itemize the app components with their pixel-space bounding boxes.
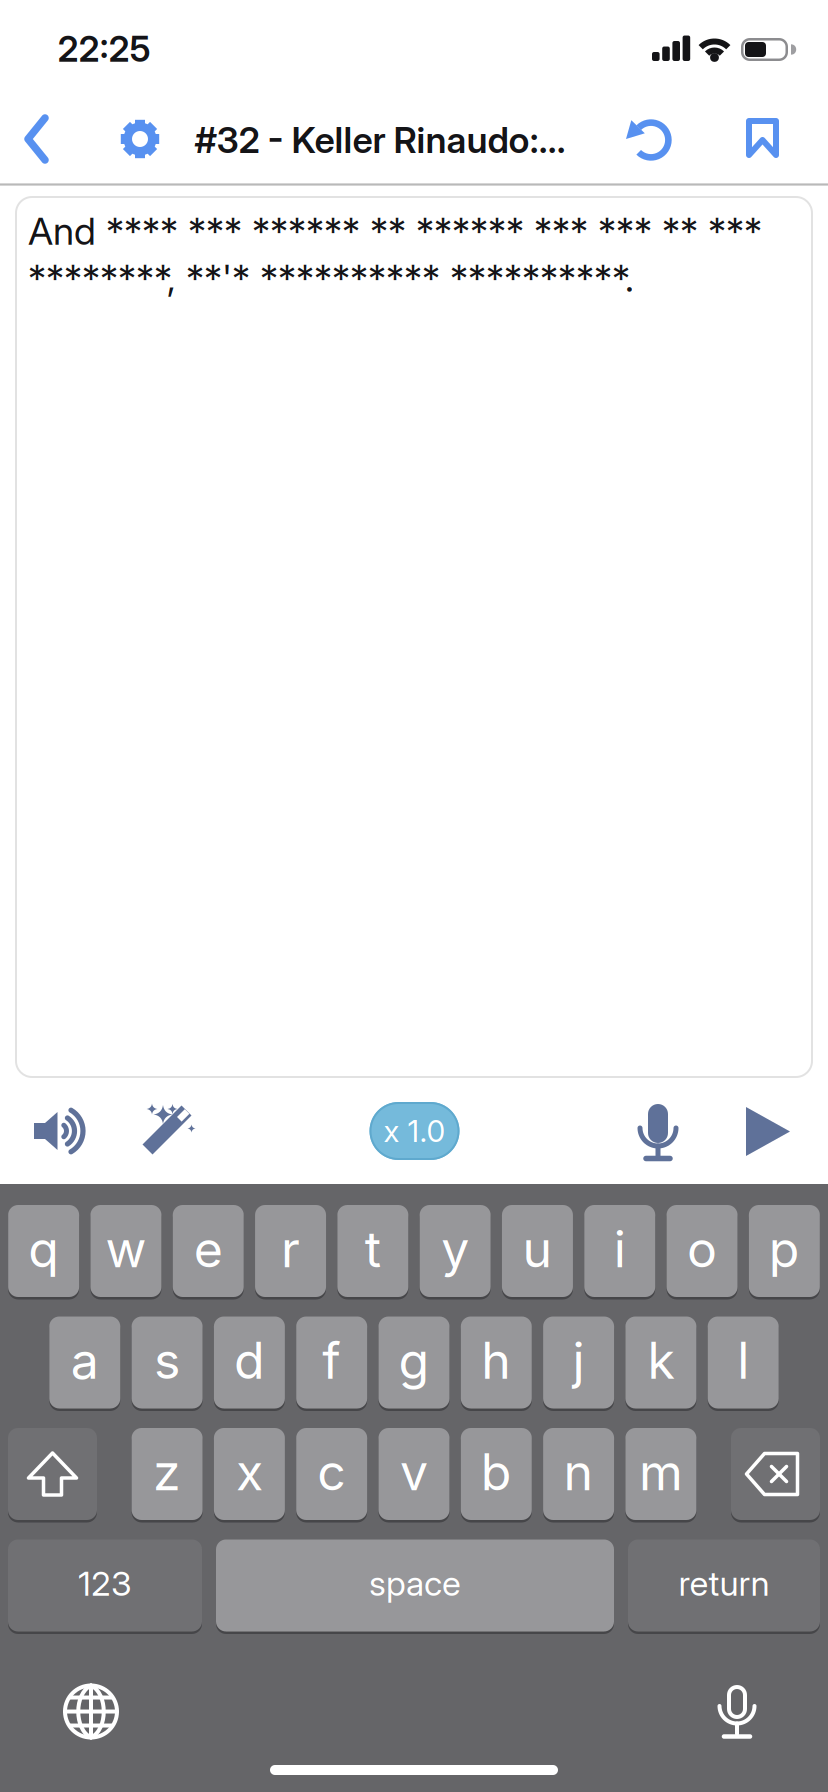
button[interactable]: f	[296, 1316, 367, 1408]
button[interactable]: Replay	[625, 113, 675, 163]
button[interactable]: Next keyboard	[63, 1683, 119, 1739]
button[interactable]: m	[625, 1428, 696, 1520]
button[interactable]: v	[378, 1428, 449, 1520]
button[interactable]: e	[173, 1205, 244, 1297]
button[interactable]: 123	[8, 1539, 202, 1631]
button[interactable]: Record	[623, 1095, 693, 1165]
staticText: e	[194, 1219, 223, 1279]
staticText: a	[71, 1330, 99, 1391]
button[interactable]: b	[461, 1428, 532, 1520]
button[interactable]: Hint	[130, 1088, 210, 1168]
button[interactable]: c	[296, 1428, 367, 1520]
button[interactable]: x	[214, 1428, 285, 1520]
button[interactable]: space	[216, 1539, 614, 1631]
button[interactable]: d	[214, 1316, 285, 1408]
staticText: h	[481, 1330, 511, 1391]
button[interactable]: j	[543, 1316, 614, 1408]
staticText: x 1.0	[383, 1113, 445, 1149]
staticText: v	[400, 1442, 428, 1502]
staticText: y	[441, 1219, 469, 1279]
button[interactable]: Play	[746, 1107, 790, 1156]
button[interactable]: Back	[24, 116, 52, 164]
button[interactable]: o	[666, 1205, 737, 1297]
button[interactable]: p	[749, 1205, 820, 1297]
staticText: p	[769, 1219, 800, 1279]
button[interactable]: t	[337, 1205, 408, 1297]
staticText: f	[322, 1330, 341, 1391]
button[interactable]: x 1.0	[369, 1102, 459, 1160]
staticText: s	[154, 1330, 180, 1391]
button[interactable]: r	[255, 1205, 326, 1297]
staticText: l	[737, 1330, 749, 1391]
staticText: c	[317, 1442, 346, 1502]
staticText: r	[281, 1219, 300, 1279]
staticText: o	[687, 1219, 717, 1279]
button[interactable]: h	[461, 1316, 532, 1408]
staticText: #32 - Keller Rinaudo:...	[194, 118, 565, 162]
button[interactable]: Dictate	[704, 1678, 770, 1740]
button[interactable]: a	[49, 1316, 120, 1408]
button[interactable]: return	[628, 1539, 820, 1631]
button[interactable]: u	[502, 1205, 573, 1297]
staticText: space	[369, 1563, 461, 1604]
button[interactable]: Bookmark	[746, 118, 779, 158]
staticText: x	[236, 1442, 263, 1502]
staticText: t	[365, 1219, 381, 1279]
button[interactable]: n	[543, 1428, 614, 1520]
button[interactable]: q	[8, 1205, 79, 1297]
button[interactable]: Listen	[25, 1099, 115, 1163]
staticText: w	[105, 1219, 146, 1279]
button[interactable]: z	[132, 1428, 203, 1520]
staticText: And **** *** ****** ** ****** *** *** **…	[28, 208, 762, 254]
button[interactable]: i	[584, 1205, 655, 1297]
button[interactable]: Delete	[731, 1428, 820, 1520]
staticText: m	[639, 1442, 683, 1502]
button[interactable]: k	[625, 1316, 696, 1408]
staticText: ********, **'* ********** **********.	[28, 255, 634, 301]
button[interactable]: Settings	[117, 116, 163, 162]
staticText: z	[153, 1442, 181, 1502]
staticText: n	[564, 1442, 594, 1502]
staticText: k	[647, 1330, 674, 1391]
staticText: q	[28, 1219, 59, 1279]
staticText: g	[398, 1330, 429, 1391]
staticText: u	[522, 1219, 552, 1279]
staticText: j	[573, 1330, 585, 1391]
staticText: i	[614, 1219, 626, 1279]
staticText: b	[481, 1442, 512, 1502]
button[interactable]: y	[420, 1205, 491, 1297]
button[interactable]: Shift	[8, 1428, 97, 1520]
staticText: 22:25	[57, 28, 150, 70]
button[interactable]: s	[132, 1316, 203, 1408]
button[interactable]: l	[708, 1316, 779, 1408]
staticText: d	[234, 1330, 265, 1391]
button[interactable]: g	[378, 1316, 449, 1408]
staticText: 123	[78, 1563, 132, 1604]
staticText: return	[678, 1563, 769, 1604]
button[interactable]: w	[90, 1205, 161, 1297]
